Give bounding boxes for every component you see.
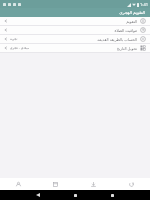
staticText: تجربة: [10, 37, 18, 41]
button[interactable]: ميلادي - هجري: [0, 44, 150, 52]
staticText: تحويل التاريخ: [116, 46, 137, 51]
staticText: ميلادي - هجري: [10, 46, 30, 50]
staticText: التقويم الهجري: [119, 10, 145, 16]
button[interactable]: Back: [34, 191, 42, 199]
button[interactable]: Download: [74, 178, 112, 190]
staticText: الحساب بالطريقة القديمة: [97, 37, 137, 42]
button[interactable]: Calendar: [37, 178, 74, 190]
staticText: 1:41: [140, 2, 148, 7]
staticText: التقويم: [126, 19, 137, 23]
button[interactable]: Recents: [109, 192, 116, 199]
button[interactable]: مواقيت الصلاة: [0, 26, 150, 34]
button[interactable]: Refresh: [112, 178, 150, 190]
button[interactable]: التقويم: [0, 17, 150, 25]
button[interactable]: Profile: [0, 178, 37, 190]
staticText: مواقيت الصلاة: [114, 28, 137, 33]
button[interactable]: Home: [72, 192, 79, 199]
button[interactable]: تجربة: [0, 35, 150, 43]
